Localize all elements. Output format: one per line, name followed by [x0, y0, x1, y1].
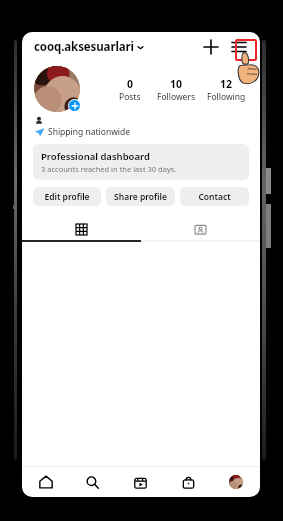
- button[interactable]: Search: [69, 467, 116, 497]
- staticText: Followers: [157, 91, 195, 103]
- staticText: Contact: [198, 191, 231, 203]
- staticText: 0: [127, 77, 134, 91]
- staticText: Share profile: [114, 191, 167, 203]
- button[interactable]: Share profile: [106, 187, 175, 206]
- staticText: Shipping nationwide: [48, 126, 131, 138]
- button[interactable]: Posts grid: [22, 218, 141, 240]
- button[interactable]: Profile photo: [34, 66, 82, 114]
- staticText: 3 accounts reached in the last 30 days.: [41, 164, 177, 174]
- button[interactable]: 12: [207, 77, 246, 103]
- staticText: cooq.aksesuarlari: [34, 39, 134, 55]
- button[interactable]: Menu: [228, 36, 250, 58]
- staticText: 10: [170, 77, 183, 91]
- staticText: 12: [220, 77, 233, 91]
- button[interactable]: 10: [157, 77, 195, 103]
- button[interactable]: Home: [22, 467, 69, 497]
- button[interactable]: New post: [200, 36, 222, 58]
- staticText: Professional dashboard: [41, 150, 150, 163]
- button[interactable]: Tagged posts: [141, 218, 260, 240]
- button[interactable]: 0: [119, 77, 141, 103]
- button[interactable]: Edit profile: [33, 187, 101, 206]
- staticText: Edit profile: [44, 191, 90, 203]
- button[interactable]: Contact: [180, 187, 249, 206]
- button[interactable]: Reels: [116, 467, 164, 497]
- button[interactable]: Professional dashboard: [33, 144, 249, 180]
- staticText: Posts: [119, 91, 141, 103]
- staticText: Following: [207, 91, 246, 103]
- button[interactable]: cooq.aksesuarlari: [34, 39, 144, 55]
- button[interactable]: Profile: [212, 467, 260, 497]
- button[interactable]: Shop: [164, 467, 212, 497]
